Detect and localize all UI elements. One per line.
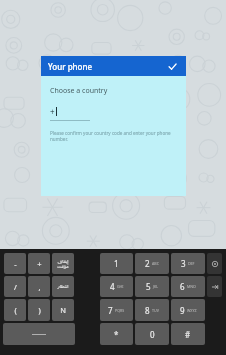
staticText: GHI (117, 284, 124, 289)
button[interactable]: * (100, 323, 133, 345)
staticText: ) (38, 305, 41, 315)
button[interactable]: N (52, 299, 74, 321)
staticText: Please confirm your country code and ent… (50, 130, 177, 142)
staticText: PQRS (115, 308, 125, 313)
button[interactable]: 8 (135, 299, 169, 321)
button[interactable]: 1 (100, 253, 133, 274)
staticText: 5 (146, 281, 151, 292)
staticText: WXYZ (187, 308, 197, 313)
staticText: 7 (108, 305, 113, 316)
button[interactable]: Your phone (41, 56, 186, 76)
staticText: + (50, 106, 55, 117)
staticText: DEF (188, 261, 195, 266)
staticText: JKL (153, 284, 159, 289)
staticText: - (14, 259, 17, 269)
staticText: # (185, 329, 191, 340)
staticText: 2 (145, 258, 150, 269)
button[interactable]: ) (28, 299, 50, 321)
staticText: 3 (181, 258, 186, 269)
button[interactable]: 6 (171, 276, 205, 297)
staticText: MNO (187, 284, 196, 289)
staticText: 0 (150, 329, 155, 340)
button[interactable]: + (50, 106, 90, 121)
staticText: 8 (145, 305, 150, 316)
button[interactable]: 5 (135, 276, 169, 297)
button[interactable]: Space (3, 323, 75, 345)
staticText: TUV (152, 308, 159, 313)
button[interactable]: 0 (135, 323, 169, 345)
button[interactable]: Choose a country (50, 86, 108, 96)
button[interactable]: 2 (135, 253, 169, 274)
button[interactable]: انتظار (52, 276, 74, 297)
button[interactable]: 7 (100, 299, 133, 321)
staticText: , (38, 282, 41, 292)
staticText: + (37, 259, 42, 269)
button[interactable]: Confirm (165, 59, 179, 73)
staticText: انتظار (57, 284, 69, 289)
staticText: 4 (110, 281, 115, 292)
staticText: ABC (152, 261, 159, 266)
button[interactable]: 3 (171, 253, 205, 274)
button[interactable]: # (171, 323, 205, 345)
staticText: ( (14, 305, 17, 315)
staticText: 6 (180, 281, 185, 292)
button[interactable]: 4 (100, 276, 133, 297)
button[interactable]: ( (4, 299, 26, 321)
button[interactable]: / (4, 276, 26, 297)
button[interactable]: - (4, 253, 26, 274)
button[interactable]: Backspace (207, 253, 222, 274)
staticText: 9 (180, 305, 185, 316)
button[interactable]: , (28, 276, 50, 297)
button[interactable]: Tab (207, 276, 222, 297)
staticText: Your phone (48, 61, 93, 72)
button[interactable]: 9 (171, 299, 205, 321)
button[interactable]: + (28, 253, 50, 274)
staticText: N (60, 305, 66, 315)
staticText: / (14, 282, 17, 292)
staticText: * (114, 329, 119, 340)
staticText: إيقاف مؤقت (52, 258, 74, 269)
staticText: 1 (114, 258, 119, 269)
button[interactable]: إيقاف مؤقت (52, 253, 74, 274)
